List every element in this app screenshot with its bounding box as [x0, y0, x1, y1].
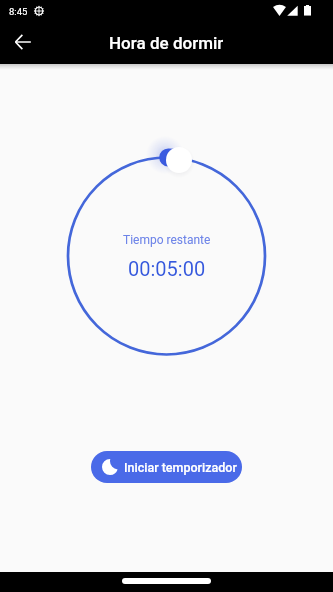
staticText: Tiempo restante: [123, 233, 211, 247]
button[interactable]: Atrás: [9, 28, 37, 56]
staticText: 00:05:00: [128, 257, 206, 280]
button[interactable]: Ajustar temporizador: [166, 147, 192, 173]
staticText: Iniciar temporizador: [124, 460, 237, 475]
staticText: 8:45: [9, 6, 28, 17]
staticText: Hora de dormir: [109, 33, 224, 53]
button[interactable]: Iniciar temporizador: [91, 451, 242, 483]
